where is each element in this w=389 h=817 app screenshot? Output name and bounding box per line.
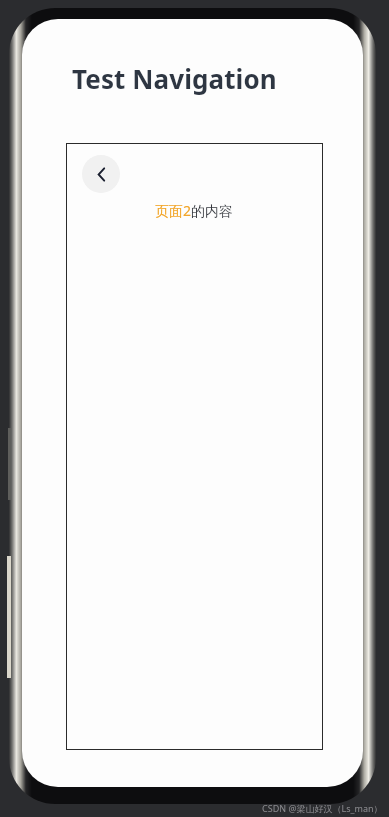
button[interactable]: Back xyxy=(82,155,120,193)
staticText: Test Navigation xyxy=(72,61,277,96)
staticText: CSDN @梁山好汉（Ls_man） xyxy=(262,802,383,814)
staticText: 页面2的内容 xyxy=(155,201,234,220)
